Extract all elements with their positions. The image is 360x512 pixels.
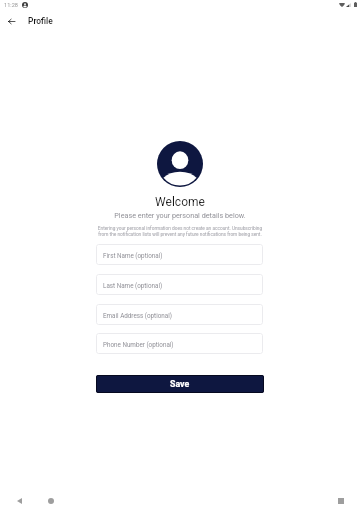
button[interactable]: Email Address (optional) [96,304,263,325]
staticText: First Name (optional) [103,252,163,259]
staticText: Welcome [0,195,360,209]
button[interactable]: Back [1,11,21,31]
staticText: Phone Number (optional) [103,341,174,348]
button[interactable]: Home [41,491,61,511]
staticText: 11:28 [4,2,18,9]
button[interactable]: Phone Number (optional) [96,333,263,354]
staticText: Please enter your personal details below… [0,211,360,219]
button[interactable]: First Name (optional) [96,244,263,265]
button[interactable]: Last Name (optional) [96,274,263,295]
button[interactable]: Recents [331,491,351,511]
staticText: Last Name (optional) [103,282,163,289]
staticText: Save [170,379,190,389]
button[interactable]: Back [9,491,29,511]
staticText: Entering your personal information does … [94,226,266,238]
button[interactable]: Save [96,375,264,393]
staticText: Email Address (optional) [103,312,172,319]
staticText: Profile [28,16,53,26]
